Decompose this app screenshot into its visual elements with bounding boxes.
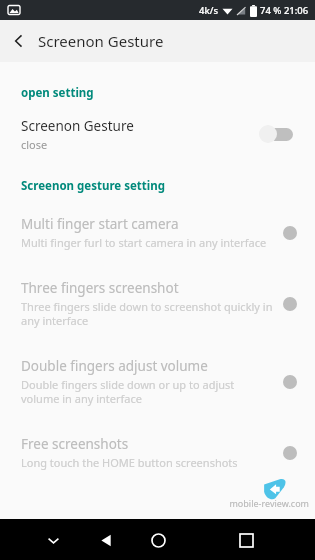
button[interactable]: Double fingers adjust volume [0, 347, 315, 416]
button[interactable]: Free screenshots [0, 425, 315, 480]
staticText: Screenon Gesture [38, 31, 164, 51]
staticText: open setting [21, 85, 94, 101]
staticText: Screenon gesture setting [21, 178, 165, 194]
button[interactable]: Back [0, 22, 38, 60]
staticText: Double fingers slide down or up to adjus… [21, 377, 273, 406]
staticText: Three fingers screenshot [21, 279, 179, 297]
staticText: 74 % 21:06 [260, 4, 309, 17]
staticText: Screenon Gesture [21, 117, 134, 135]
button[interactable]: Three fingers screenshot [0, 269, 315, 338]
button[interactable]: Home [143, 525, 173, 555]
staticText: Long touch the HOME button screenshots [21, 455, 238, 470]
staticText: Multi finger start camera [21, 215, 179, 233]
button[interactable]: Multi finger start camera [0, 205, 315, 260]
staticText: mobile-review.com [229, 497, 309, 509]
staticText: Three fingers slide down to screenshot q… [21, 299, 273, 328]
staticText: Free screenshots [21, 435, 129, 453]
staticText: close [21, 137, 48, 152]
button[interactable]: Recent apps [231, 525, 261, 555]
staticText: Multi finger furl to start camera in any… [21, 235, 267, 250]
staticText: 4k/s [199, 4, 219, 17]
staticText: Double fingers adjust volume [21, 357, 208, 375]
button[interactable]: Screenon Gesture [0, 110, 315, 158]
button[interactable]: Hide keyboard [38, 525, 68, 555]
button[interactable]: Back [91, 525, 121, 555]
